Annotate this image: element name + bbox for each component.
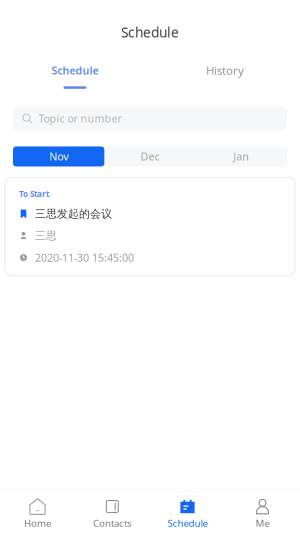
button[interactable]: To Start xyxy=(6,178,294,275)
staticText: Nov xyxy=(49,149,68,164)
staticText: Schedule xyxy=(167,516,207,530)
button[interactable]: History xyxy=(150,57,300,90)
button[interactable]: Jan xyxy=(196,146,287,166)
button[interactable]: Schedule xyxy=(0,58,150,90)
staticText: Schedule xyxy=(121,23,179,41)
staticText: Me xyxy=(255,516,269,530)
staticText: History xyxy=(206,62,244,78)
staticText: To Start xyxy=(19,188,49,199)
staticText: Schedule xyxy=(51,63,98,77)
button[interactable]: Nov xyxy=(13,146,104,166)
button[interactable]: Me xyxy=(225,492,300,533)
button[interactable]: Contacts xyxy=(75,492,150,533)
button[interactable]: Dec xyxy=(104,146,196,166)
button[interactable]: Home xyxy=(0,492,75,533)
button[interactable]: Schedule xyxy=(150,492,225,533)
staticText: Topic or number xyxy=(39,111,122,126)
staticText: Home xyxy=(24,516,51,530)
staticText: Contacts xyxy=(93,516,132,530)
staticText: 三思 xyxy=(35,229,57,242)
staticText: Jan xyxy=(233,149,249,164)
staticText: 2020-11-30 15:45:00 xyxy=(35,250,134,265)
staticText: 三思发起的会议 xyxy=(35,207,112,221)
staticText: Dec xyxy=(140,149,159,164)
